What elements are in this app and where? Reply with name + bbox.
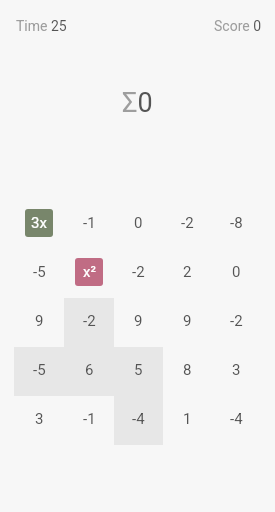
button[interactable]: 9 <box>163 298 212 347</box>
button[interactable]: -4 <box>114 396 163 445</box>
button[interactable]: -2 <box>163 200 212 249</box>
staticText: 3 <box>232 361 241 379</box>
button[interactable]: -2 <box>64 298 114 347</box>
button[interactable]: x² <box>64 249 114 298</box>
button[interactable]: 9 <box>14 298 64 347</box>
staticText: 6 <box>85 361 94 379</box>
staticText: 9 <box>183 312 192 330</box>
staticText: 2 <box>183 263 192 281</box>
button[interactable]: 1 <box>163 396 212 445</box>
staticText: 9 <box>35 312 44 330</box>
staticText: 3x <box>31 214 47 232</box>
button[interactable]: Score 0 <box>214 18 262 34</box>
staticText: 0 <box>232 263 241 281</box>
button[interactable]: -4 <box>212 396 261 445</box>
staticText: -2 <box>83 312 96 330</box>
staticText: -4 <box>230 410 243 428</box>
button[interactable]: 0 <box>114 200 163 249</box>
button[interactable]: 6 <box>64 347 114 396</box>
button[interactable]: -5 <box>14 347 64 396</box>
staticText: Time 25 <box>16 18 67 34</box>
staticText: 1 <box>183 410 192 428</box>
button[interactable]: -1 <box>64 200 114 249</box>
button[interactable]: -2 <box>212 298 261 347</box>
staticText: Σ0 <box>122 87 153 119</box>
button[interactable]: -2 <box>114 249 163 298</box>
staticText: -8 <box>230 214 243 232</box>
button[interactable]: 2 <box>163 249 212 298</box>
button[interactable]: 9 <box>114 298 163 347</box>
staticText: -5 <box>33 361 46 379</box>
staticText: -2 <box>230 312 243 330</box>
staticText: 9 <box>134 312 143 330</box>
staticText: 3 <box>35 410 44 428</box>
staticText: 0 <box>134 214 143 232</box>
button[interactable]: -8 <box>212 200 261 249</box>
button[interactable]: -1 <box>64 396 114 445</box>
staticText: -4 <box>132 410 145 428</box>
button[interactable]: -5 <box>14 249 64 298</box>
staticText: 5 <box>134 361 143 379</box>
staticText: Score 0 <box>214 18 262 34</box>
staticText: x² <box>83 263 96 281</box>
button[interactable]: Time 25 <box>16 18 67 34</box>
button[interactable]: 5 <box>114 347 163 396</box>
button[interactable]: 3x <box>14 200 64 249</box>
staticText: 8 <box>183 361 192 379</box>
staticText: -5 <box>33 263 46 281</box>
button[interactable]: 8 <box>163 347 212 396</box>
staticText: -1 <box>83 214 96 232</box>
staticText: -2 <box>181 214 194 232</box>
staticText: -1 <box>83 410 96 428</box>
button[interactable]: 0 <box>212 249 261 298</box>
staticText: -2 <box>132 263 145 281</box>
button[interactable]: 3 <box>14 396 64 445</box>
button[interactable]: 3 <box>212 347 261 396</box>
